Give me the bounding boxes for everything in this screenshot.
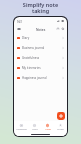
button[interactable]: Happiness journal xyxy=(14,73,67,83)
staticText: Happiness journal xyxy=(22,76,47,80)
button[interactable]: Add note xyxy=(57,112,65,120)
staticText: Simplify note taking xyxy=(0,1,81,14)
staticText: Gratefulness xyxy=(22,56,40,60)
button[interactable]: My itineraries xyxy=(14,63,67,73)
button[interactable]: Undo xyxy=(56,27,60,31)
button[interactable]: Notes xyxy=(41,121,54,132)
button[interactable]: Business journal xyxy=(14,43,67,53)
staticText: Business journal xyxy=(22,46,45,50)
button[interactable]: Menu xyxy=(17,27,21,31)
button[interactable]: Profile xyxy=(54,121,67,132)
staticText: Profile xyxy=(57,128,64,131)
staticText: Notes xyxy=(45,128,51,131)
staticText: 9:41 xyxy=(17,20,22,23)
button[interactable]: Diary xyxy=(14,33,67,43)
staticText: Diary xyxy=(22,36,30,40)
button[interactable]: Gratefulness xyxy=(14,53,67,63)
staticText: My itineraries xyxy=(22,66,41,70)
staticText: Notebooks xyxy=(16,128,27,131)
staticText: Tasks xyxy=(32,128,38,131)
staticText: Notes xyxy=(36,27,46,31)
button[interactable]: Search xyxy=(61,27,65,31)
button[interactable]: Notebooks xyxy=(14,121,28,132)
button[interactable]: Tasks xyxy=(28,121,41,132)
